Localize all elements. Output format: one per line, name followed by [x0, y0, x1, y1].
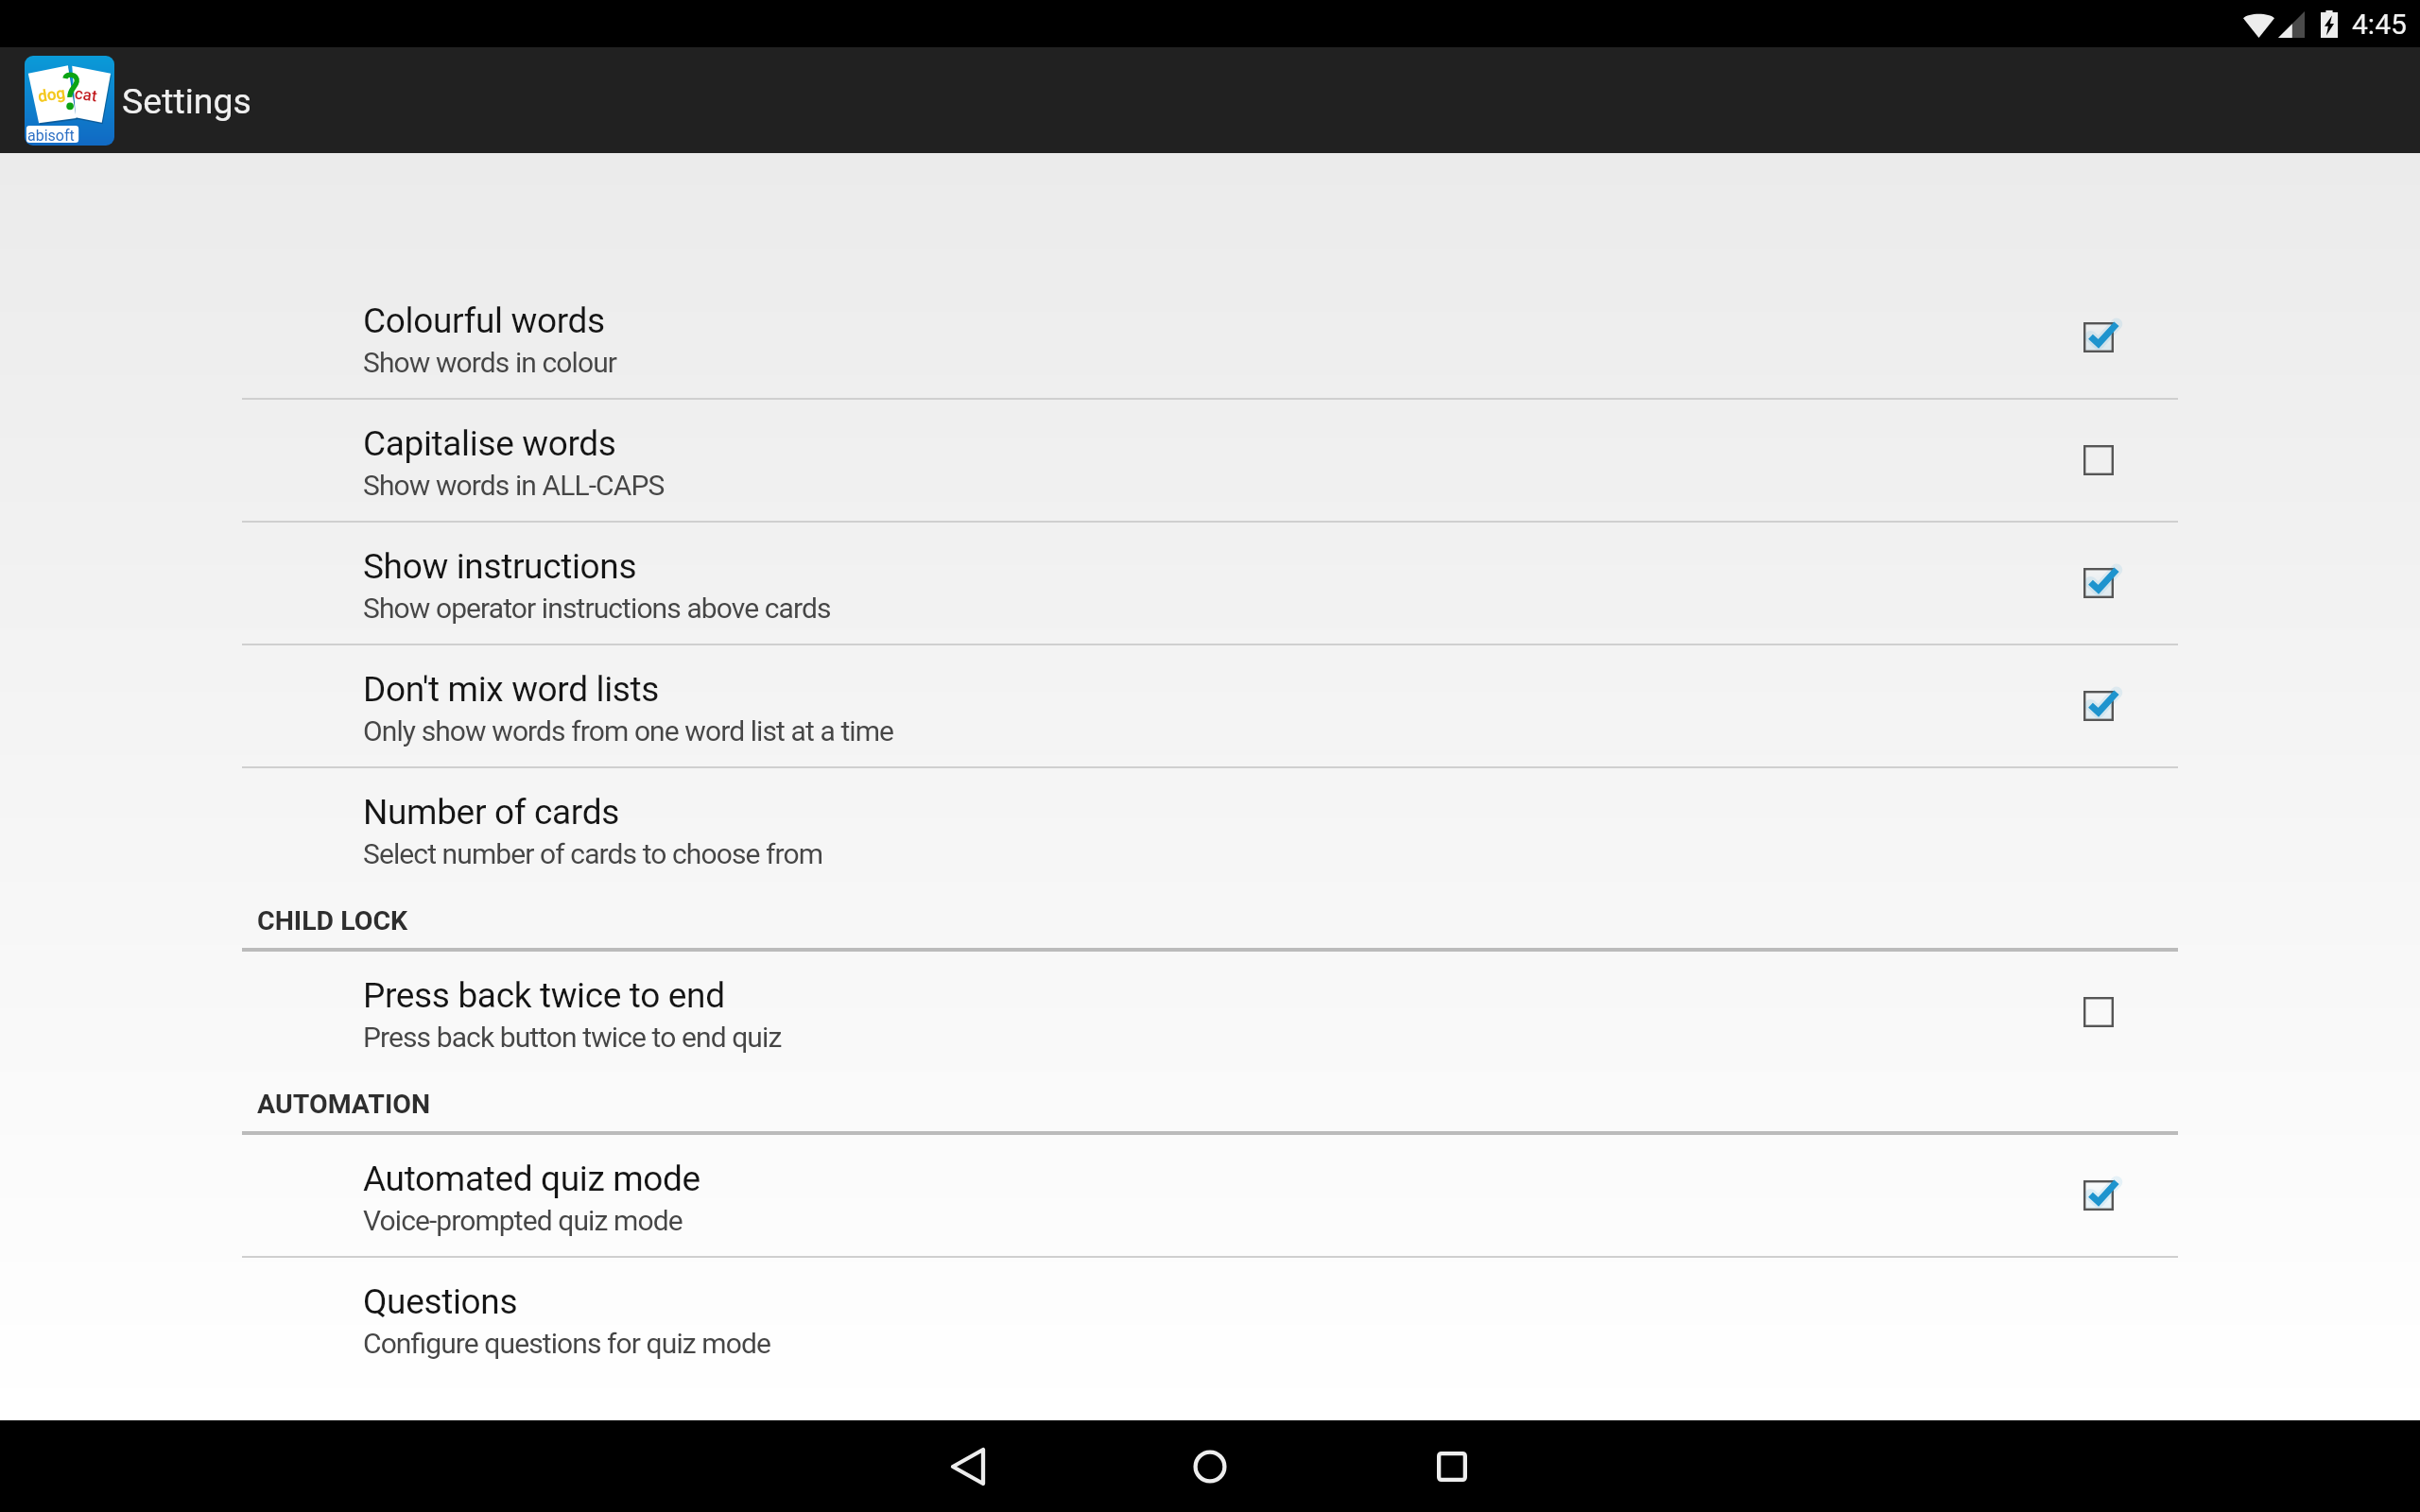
staticText: Number of cards	[363, 792, 619, 833]
staticText: Capitalise words	[363, 423, 616, 464]
button[interactable]: Checked	[2068, 676, 2129, 736]
button[interactable]: Questions	[0, 1258, 2420, 1379]
button[interactable]: Don't mix word lists	[0, 645, 2420, 766]
staticText: Only show words from one word list at a …	[363, 714, 894, 747]
staticText: Questions	[363, 1281, 518, 1322]
button[interactable]: Checked	[2068, 553, 2129, 613]
staticText: Settings	[122, 80, 251, 122]
staticText: cat	[73, 84, 99, 105]
staticText: Press back button twice to end quiz	[363, 1021, 782, 1054]
staticText: Automated quiz mode	[363, 1159, 700, 1199]
button[interactable]: Recents	[1331, 1420, 1573, 1512]
button[interactable]: Unchecked	[2068, 982, 2129, 1042]
staticText: Don't mix word lists	[363, 669, 660, 710]
button[interactable]: Capitalise words	[0, 400, 2420, 521]
button[interactable]: Home	[1089, 1420, 1331, 1512]
staticText: 4:45	[2352, 8, 2407, 41]
staticText: Show words in ALL-CAPS	[363, 469, 665, 502]
button[interactable]: Automated quiz mode	[0, 1135, 2420, 1256]
button[interactable]: Number of cards	[0, 768, 2420, 889]
button[interactable]: Checked	[2068, 307, 2129, 368]
button[interactable]: Press back twice to end	[0, 952, 2420, 1073]
staticText: abisoft	[27, 127, 75, 145]
staticText: AUTOMATION	[257, 1089, 431, 1120]
staticText: CHILD LOCK	[257, 905, 408, 936]
button[interactable]: Unchecked	[2068, 430, 2129, 490]
staticText: Configure questions for quiz mode	[363, 1327, 770, 1360]
staticText: Show words in colour	[363, 346, 617, 379]
staticText: Press back twice to end	[363, 975, 725, 1016]
button[interactable]: Back	[847, 1420, 1089, 1512]
button[interactable]: Colourful words	[0, 277, 2420, 398]
staticText: Show instructions	[363, 546, 637, 587]
button[interactable]: Checked	[2068, 1165, 2129, 1226]
button[interactable]: Show instructions	[0, 523, 2420, 644]
staticText: dog	[37, 83, 66, 106]
staticText: Voice-prompted quiz mode	[363, 1204, 683, 1237]
staticText: Select number of cards to choose from	[363, 837, 823, 870]
staticText: Colourful words	[363, 301, 605, 341]
staticText: Show operator instructions above cards	[363, 592, 831, 625]
